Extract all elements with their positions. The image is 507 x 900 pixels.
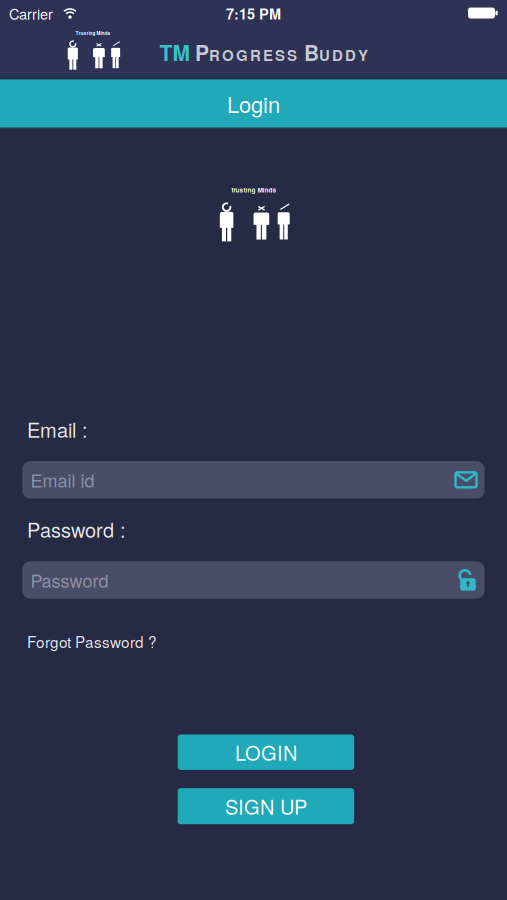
staticText: Password : <box>27 515 126 543</box>
staticText: Password <box>30 567 108 593</box>
staticText: 7:15 PM <box>226 3 281 24</box>
staticText: Trusting Minds <box>230 185 276 195</box>
staticText: Email id <box>30 467 94 493</box>
staticText: Trusting Minds <box>75 30 110 36</box>
button[interactable]: Password <box>22 561 484 599</box>
staticText: Login <box>227 88 280 119</box>
staticText: SIGN UP <box>225 792 307 820</box>
staticText: LOGIN <box>235 738 297 766</box>
button[interactable]: LOGIN <box>178 734 354 770</box>
staticText: Email : <box>27 415 88 443</box>
staticText: PR O G R E S S BU D D Y <box>189 38 368 67</box>
staticText: Carrier <box>9 3 53 24</box>
button[interactable]: Forgot Password ? <box>27 630 157 652</box>
staticText: Forgot Password ? <box>27 630 157 652</box>
staticText: TM <box>159 37 189 68</box>
button[interactable]: Email id <box>22 461 484 499</box>
button[interactable]: SIGN UP <box>178 788 354 824</box>
